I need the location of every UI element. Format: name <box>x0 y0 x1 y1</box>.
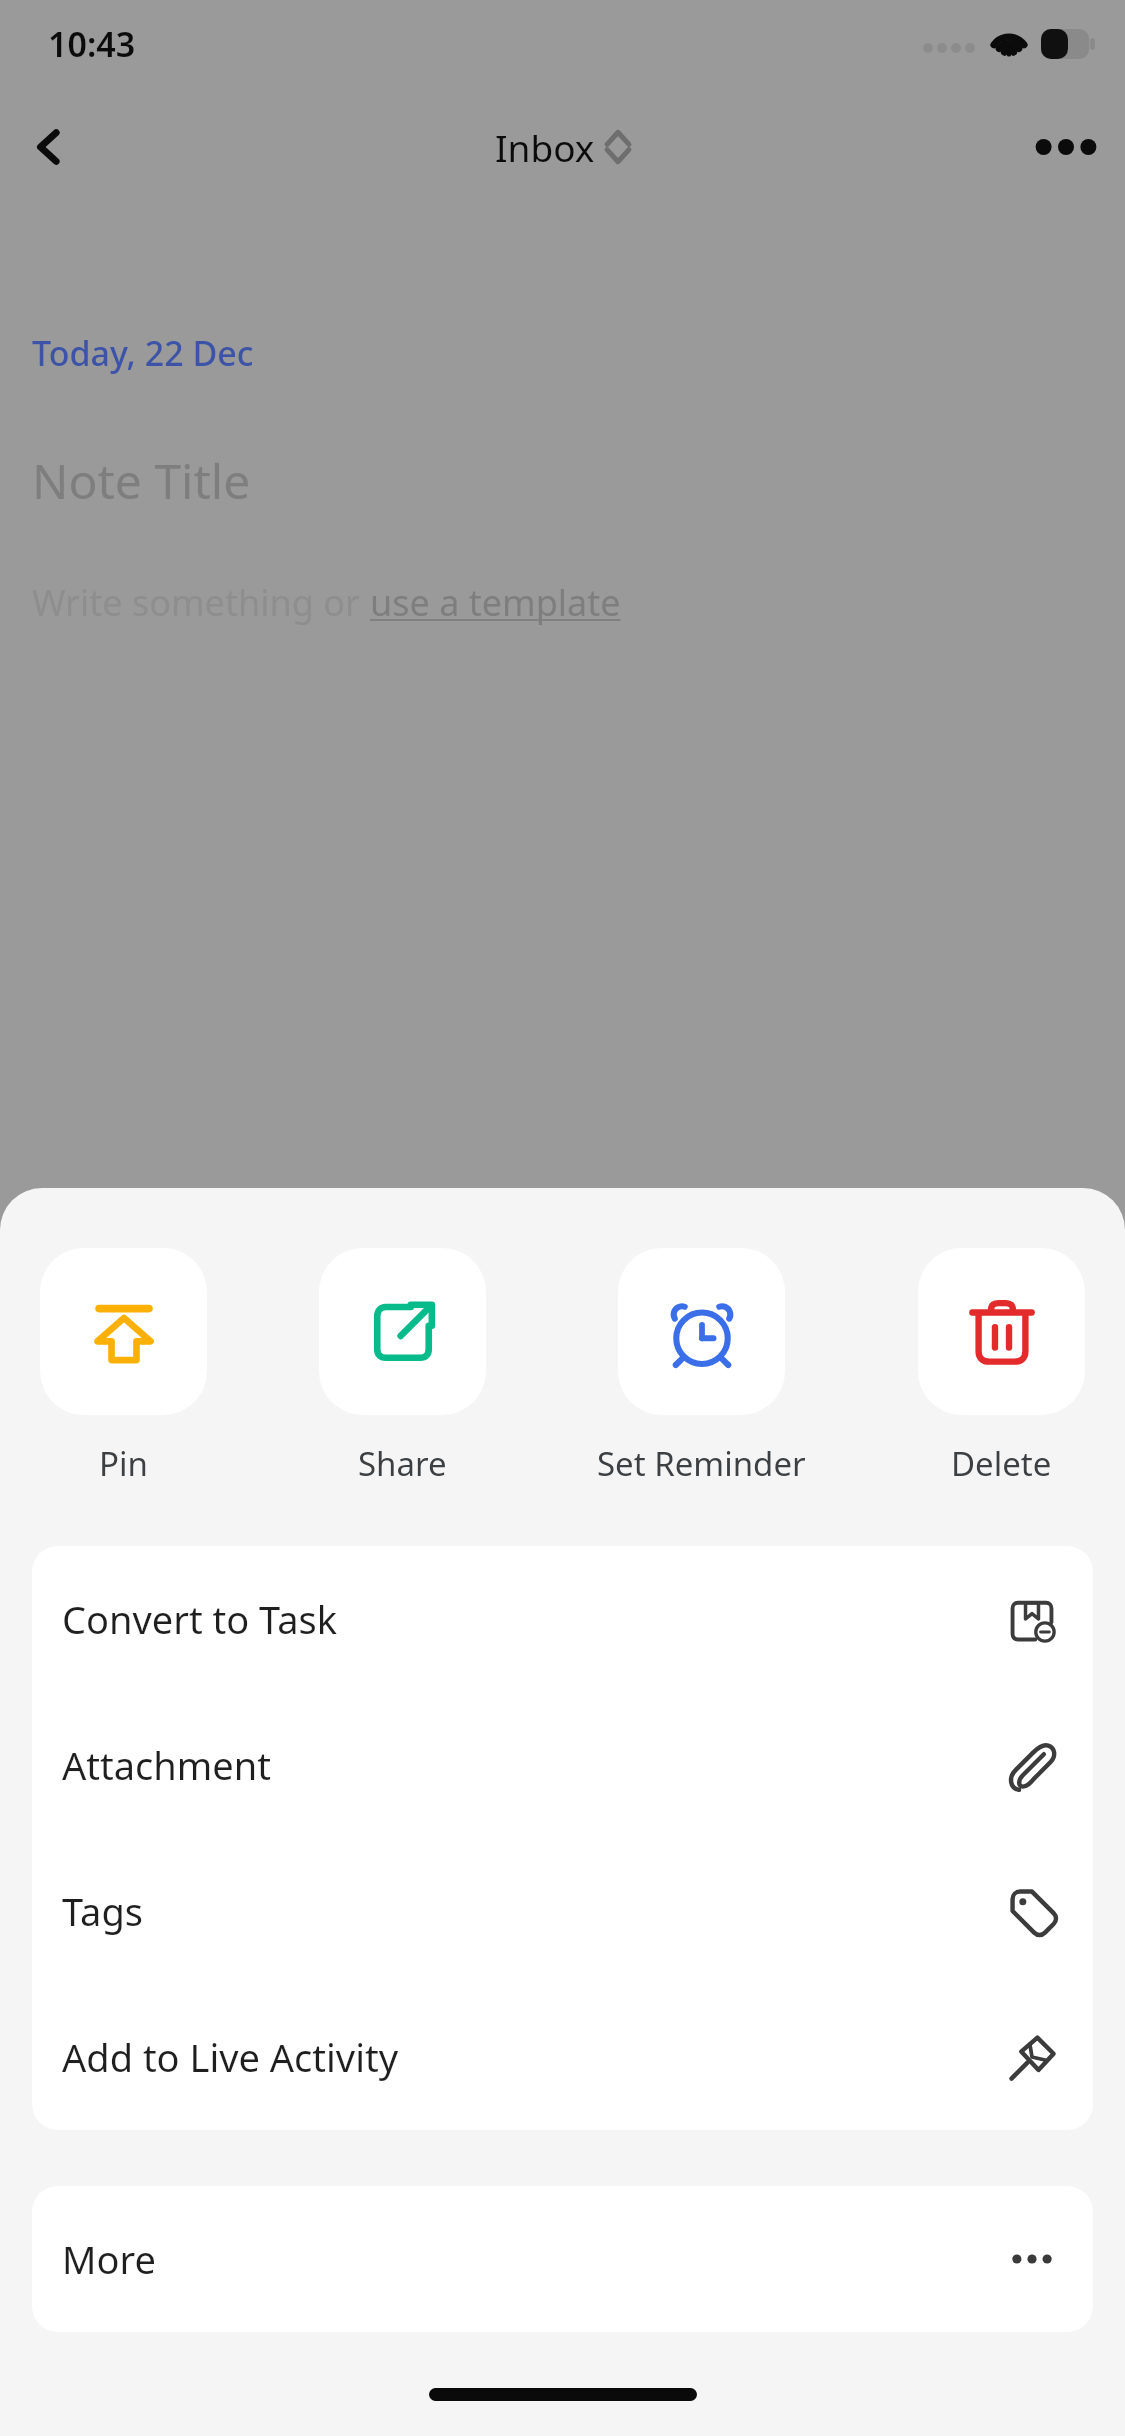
button[interactable]: Tags <box>32 1838 1093 1984</box>
button[interactable]: More options <box>1033 114 1099 180</box>
button[interactable]: Share <box>319 1248 486 1486</box>
staticText: Note Title <box>32 448 251 513</box>
staticText: Today, 22 Dec <box>32 330 254 376</box>
staticText: Pin <box>99 1441 148 1486</box>
button[interactable]: Inbox <box>495 122 631 172</box>
button[interactable]: Delete <box>918 1248 1085 1486</box>
staticText: Tags <box>62 1885 143 1937</box>
button[interactable]: use a template <box>370 578 621 627</box>
button[interactable]: Pin <box>40 1248 207 1486</box>
staticText: Delete <box>951 1441 1052 1486</box>
staticText: Inbox <box>495 122 595 172</box>
button[interactable]: More <box>32 2186 1093 2332</box>
staticText: Write something or <box>32 578 370 627</box>
staticText: Set Reminder <box>597 1441 806 1486</box>
button[interactable]: Convert to Task <box>32 1546 1093 1692</box>
staticText: Share <box>358 1441 447 1486</box>
button[interactable]: Attachment <box>32 1692 1093 1838</box>
button[interactable]: Add to Live Activity <box>32 1984 1093 2130</box>
staticText: Convert to Task <box>62 1593 338 1645</box>
staticText: More <box>62 2233 156 2285</box>
staticText: Add to Live Activity <box>62 2031 399 2083</box>
staticText: 10:43 <box>48 21 136 67</box>
button[interactable]: Set Reminder <box>597 1248 806 1486</box>
button[interactable]: Back <box>22 119 78 175</box>
staticText: Attachment <box>62 1739 271 1791</box>
